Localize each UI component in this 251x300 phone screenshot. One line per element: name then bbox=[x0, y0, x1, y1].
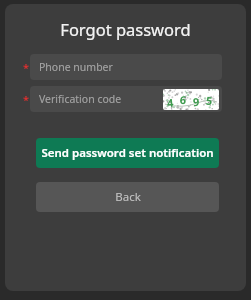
button[interactable]: Phone number bbox=[30, 54, 222, 80]
staticText: Verification code bbox=[39, 92, 122, 106]
staticText: 9 bbox=[192, 94, 200, 109]
staticText: 5 bbox=[205, 93, 214, 108]
staticText: Send password set notification bbox=[41, 145, 214, 161]
staticText: 4 bbox=[166, 95, 175, 110]
button[interactable]: Refresh verification code image bbox=[163, 89, 219, 110]
staticText: * bbox=[23, 60, 29, 75]
staticText: Back bbox=[115, 189, 141, 205]
staticText: 6 bbox=[179, 92, 188, 107]
staticText: Phone number bbox=[39, 60, 113, 74]
staticText: * bbox=[23, 92, 29, 107]
staticText: Forgot password bbox=[60, 18, 191, 40]
button[interactable]: Verification code bbox=[30, 86, 222, 112]
button[interactable]: Send password set notification bbox=[36, 138, 219, 168]
button[interactable]: Back bbox=[36, 182, 219, 212]
